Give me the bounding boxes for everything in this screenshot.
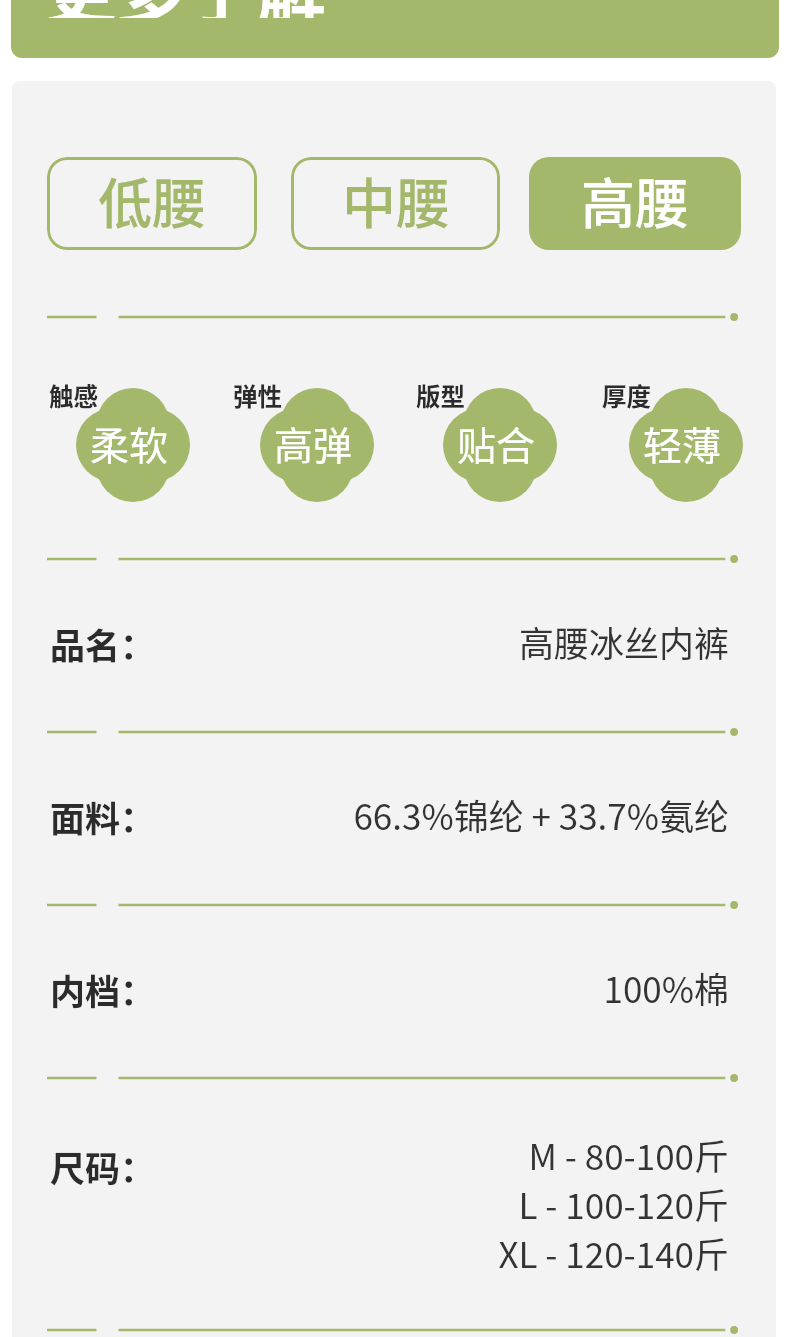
staticText: 高腰 (581, 161, 689, 239)
button[interactable]: 面料： (47, 789, 738, 840)
staticText: 低腰 (98, 161, 206, 239)
button[interactable]: 低腰 (47, 157, 257, 250)
button[interactable]: 版型 (443, 388, 557, 502)
staticText: 贴合 (457, 415, 536, 471)
button[interactable]: 品名： (47, 616, 738, 667)
button[interactable]: 内档： (47, 962, 738, 1013)
staticText: 弹性 (233, 378, 282, 413)
staticText: 中腰 (342, 161, 450, 239)
staticText: 100%棉 (603, 962, 729, 1013)
button[interactable]: 厚度 (629, 388, 743, 502)
button[interactable]: 弹性 (260, 388, 374, 502)
button[interactable]: 中腰 (291, 157, 500, 250)
staticText: 高弹 (274, 415, 353, 471)
staticText: 更多了解 (46, 0, 326, 18)
staticText: 面料： (50, 791, 156, 842)
staticText: 版型 (416, 378, 465, 413)
button[interactable]: 触感 (76, 388, 190, 502)
staticText: 厚度 (602, 378, 651, 413)
button[interactable]: 高腰 (529, 157, 741, 250)
staticText: 66.3%锦纶 + 33.7%氨纶 (353, 789, 729, 840)
button[interactable]: 尺码： (47, 1129, 738, 1278)
staticText: 高腰冰丝内裤 (518, 616, 729, 667)
staticText: M - 80-100斤 L - 100-120斤 XL - 120-140斤 (498, 1129, 729, 1278)
staticText: 触感 (49, 378, 98, 413)
staticText: 柔软 (90, 415, 169, 471)
staticText: 尺码： (50, 1141, 156, 1192)
button[interactable]: 更多了解 (11, 0, 779, 58)
staticText: 轻薄 (643, 415, 722, 471)
staticText: 内档： (50, 964, 156, 1015)
staticText: 品名： (50, 618, 156, 669)
